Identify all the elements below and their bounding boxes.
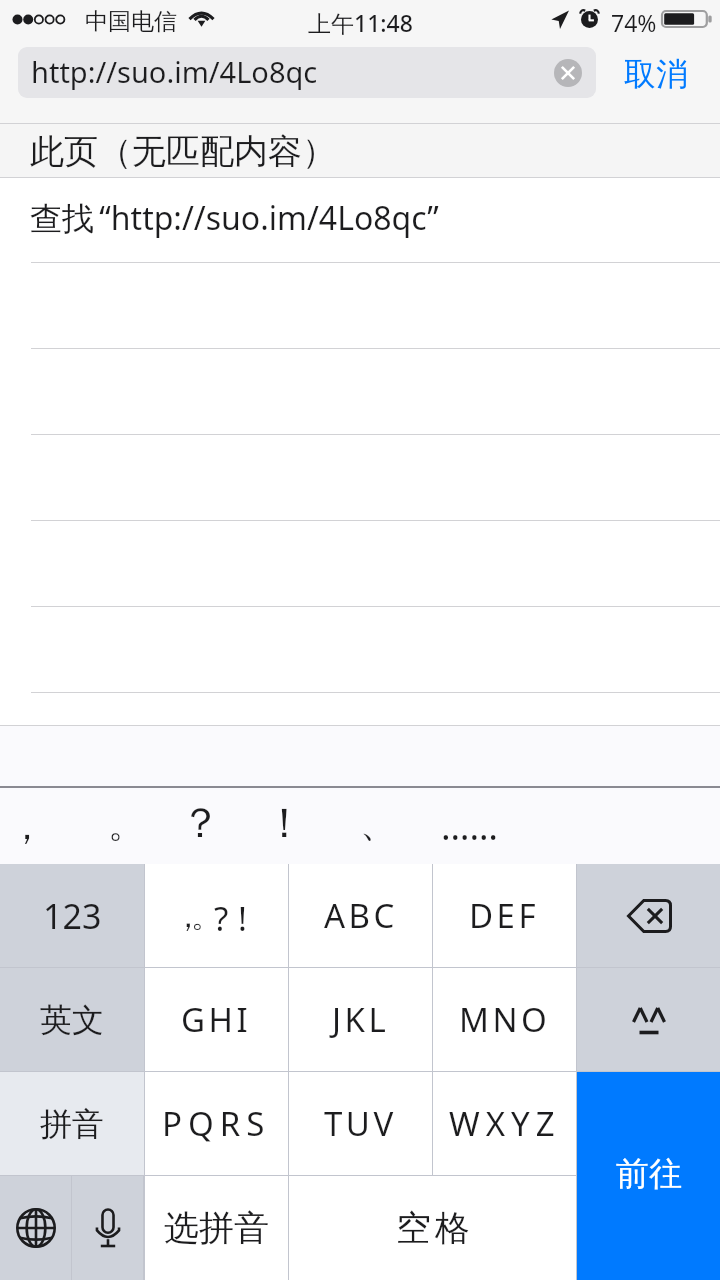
button[interactable]: 空格 xyxy=(289,1176,576,1280)
button[interactable]: 。 xyxy=(93,788,159,864)
button[interactable]: MNO xyxy=(433,968,576,1071)
button[interactable]: Voice input xyxy=(72,1176,143,1280)
staticText: 中国电信 xyxy=(85,7,177,36)
button[interactable]: Backspace xyxy=(577,864,720,967)
button[interactable]: 英文 xyxy=(0,968,144,1071)
staticText: ! xyxy=(238,896,247,936)
button[interactable] xyxy=(0,607,720,693)
button[interactable]: WXYZ xyxy=(433,1072,576,1175)
staticText: 、 xyxy=(360,801,396,846)
button[interactable]: Emoticons xyxy=(577,968,720,1071)
button[interactable]: 123 xyxy=(0,864,144,967)
staticText: ， xyxy=(173,898,203,936)
button[interactable] xyxy=(0,263,720,349)
button[interactable]: 选拼音 xyxy=(145,1176,288,1280)
staticText: 此页（无匹配内容） xyxy=(30,130,336,173)
staticText: GHI xyxy=(181,997,252,1042)
button[interactable]: 查找 “http://suo.im/4Lo8qc” xyxy=(0,178,720,263)
staticText: 拼音 xyxy=(40,1104,104,1144)
staticText: ? xyxy=(214,896,229,936)
button[interactable] xyxy=(0,435,720,521)
staticText: 选拼音 xyxy=(164,1206,269,1250)
button[interactable]: Clear xyxy=(554,59,582,87)
staticText: 前往 xyxy=(616,1153,682,1195)
button[interactable]: Switch keyboard xyxy=(0,1176,71,1280)
staticText: ， xyxy=(9,804,45,849)
staticText: 。 xyxy=(108,802,144,847)
button[interactable]: ABC xyxy=(289,864,432,967)
button[interactable]: 拼音 xyxy=(0,1072,144,1175)
button[interactable]: ？ xyxy=(167,788,233,864)
staticText: …… xyxy=(441,802,498,851)
staticText: 取消 xyxy=(624,54,688,94)
button[interactable]: GHI xyxy=(145,968,288,1071)
button[interactable]: 、 xyxy=(345,788,411,864)
staticText: JKL xyxy=(332,997,390,1042)
button[interactable] xyxy=(0,521,720,607)
staticText: ABC xyxy=(324,893,398,938)
button[interactable]: TUV xyxy=(289,1072,432,1175)
staticText: http://suo.im/4Lo8qc xyxy=(31,52,318,91)
button[interactable] xyxy=(0,349,720,435)
button[interactable]: PQRS xyxy=(145,1072,288,1175)
button[interactable]: …… xyxy=(419,788,519,864)
staticText: MNO xyxy=(459,997,551,1042)
staticText: ？ xyxy=(180,798,221,850)
staticText: 上午11:48 xyxy=(308,7,413,38)
button[interactable]: JKL xyxy=(289,968,432,1071)
button[interactable]: DEF xyxy=(433,864,576,967)
staticText: ！ xyxy=(264,798,305,850)
staticText: 空格 xyxy=(394,1206,472,1250)
staticText: TUV xyxy=(324,1101,397,1146)
button[interactable]: http://suo.im/4Lo8qc xyxy=(18,47,596,98)
staticText: 74% xyxy=(611,7,657,38)
staticText: 英文 xyxy=(40,1000,104,1040)
button[interactable]: ， xyxy=(0,788,60,864)
button[interactable]: ！ xyxy=(251,788,317,864)
button[interactable]: Punctuation xyxy=(145,864,288,967)
staticText: 查找 “http://suo.im/4Lo8qc” xyxy=(30,196,439,240)
button[interactable]: 取消 xyxy=(608,48,704,100)
staticText: WXYZ xyxy=(449,1101,561,1146)
staticText: DEF xyxy=(469,893,540,938)
button[interactable]: 前往 xyxy=(577,1072,720,1280)
staticText: 。 xyxy=(191,898,221,936)
staticText: PQRS xyxy=(162,1101,271,1146)
staticText: 123 xyxy=(43,893,102,939)
